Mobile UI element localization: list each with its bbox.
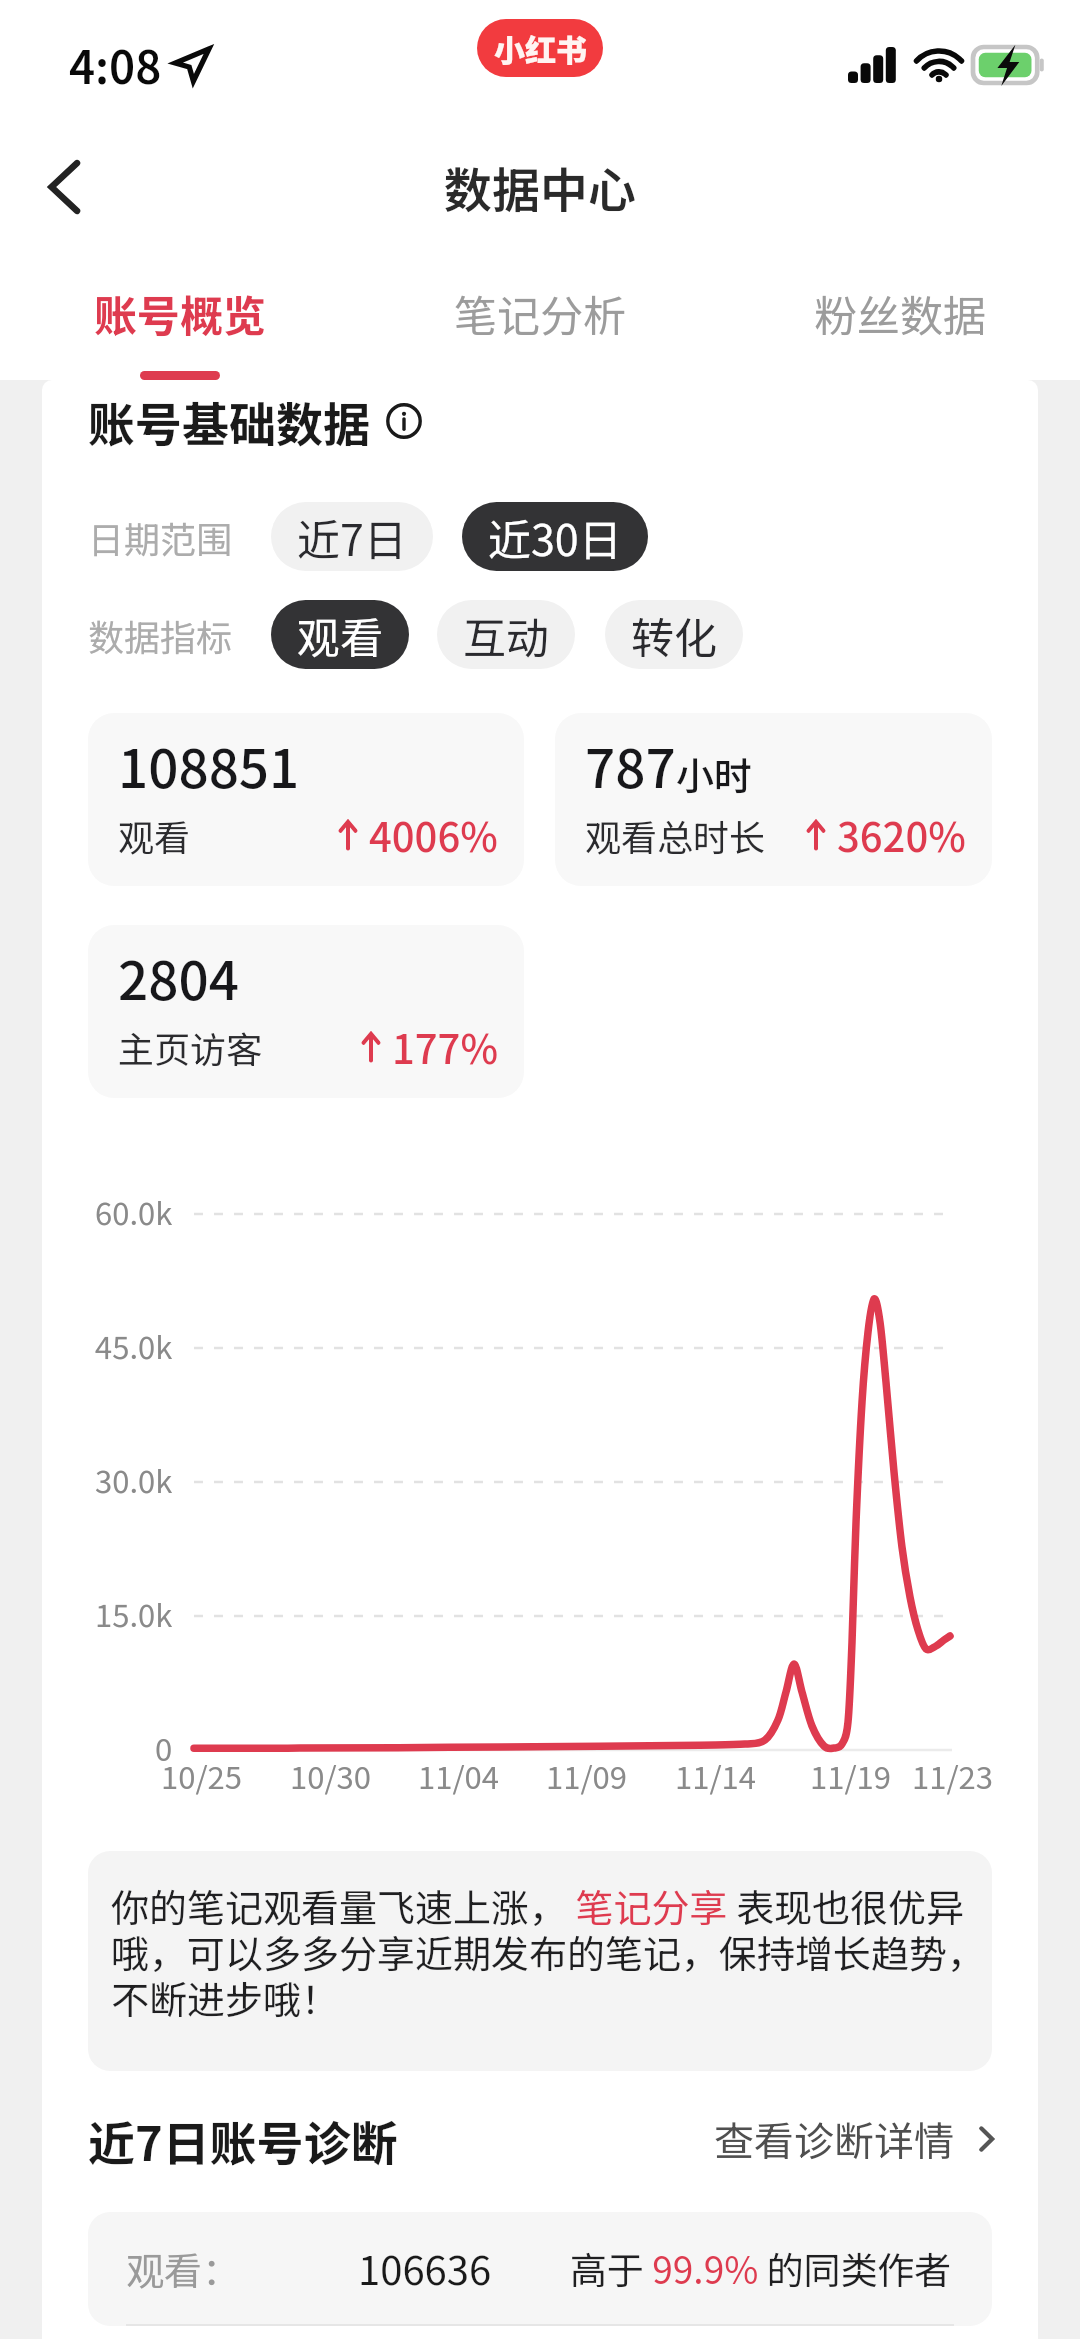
staticText: 日期范围	[88, 511, 233, 563]
button[interactable]: 2804	[88, 925, 524, 1098]
button[interactable]: Info	[382, 399, 426, 443]
button[interactable]: 账号概览	[0, 250, 360, 380]
staticText: 账号基础数据	[88, 387, 370, 455]
staticText: 787	[585, 727, 676, 804]
staticText: 查看诊断详情	[714, 2110, 954, 2168]
staticText: 笔记分析	[454, 282, 626, 344]
staticText: 近7日	[297, 506, 407, 568]
button[interactable]: 787	[555, 713, 992, 886]
staticText: 11/19	[810, 1753, 891, 1798]
staticText: 小红书	[494, 26, 587, 71]
staticText: 4:08	[69, 32, 162, 97]
button[interactable]: 粉丝数据	[720, 250, 1080, 380]
button[interactable]: Back	[26, 149, 102, 225]
staticText: 观看总时长	[585, 809, 766, 861]
staticText: 10/25	[161, 1753, 242, 1798]
staticText: 3620%	[837, 806, 966, 864]
staticText: 108851	[118, 727, 300, 804]
button[interactable]: 互动	[437, 600, 575, 669]
staticText: 11/23	[912, 1753, 993, 1798]
staticText: 0	[155, 1725, 173, 1770]
staticText: 近7日账号诊断	[88, 2106, 398, 2172]
staticText: 转化	[631, 604, 717, 666]
staticText: 10/30	[290, 1753, 371, 1798]
staticText: 高于 99.9% 的同类作者	[570, 2241, 952, 2295]
staticText: 观看：	[126, 2241, 241, 2296]
button[interactable]: 108851	[88, 713, 524, 886]
staticText: 观看	[297, 604, 383, 666]
staticText: 15.0k	[95, 1591, 173, 1636]
staticText: 45.0k	[95, 1323, 173, 1368]
staticText: 177%	[392, 1018, 498, 1076]
staticText: 30.0k	[95, 1457, 173, 1502]
button[interactable]: 查看诊断详情	[714, 2110, 1000, 2168]
staticText: 你的笔记观看量飞速上涨， 笔记分享 表现也很优异哦，可以多多分享近期发布的笔记，…	[111, 1878, 990, 2025]
staticText: 11/04	[418, 1753, 499, 1798]
staticText: 106636	[358, 2239, 492, 2297]
button[interactable]: 近7日	[271, 502, 433, 571]
staticText: 观看	[118, 809, 191, 861]
button[interactable]: 转化	[605, 600, 743, 669]
staticText: 11/09	[546, 1753, 627, 1798]
button[interactable]: 近30日	[462, 502, 648, 571]
staticText: 小时	[676, 746, 753, 801]
staticText: 2804	[118, 939, 239, 1016]
staticText: 互动	[463, 604, 549, 666]
staticText: 数据指标	[88, 609, 233, 661]
staticText: 60.0k	[95, 1189, 173, 1234]
button[interactable]: 笔记分析	[360, 250, 720, 380]
staticText: 4006%	[369, 806, 498, 864]
staticText: 近30日	[488, 506, 622, 568]
staticText: 11/14	[675, 1753, 756, 1798]
staticText: 粉丝数据	[814, 282, 986, 344]
staticText: 账号概览	[94, 282, 266, 344]
button[interactable]: 观看	[271, 600, 409, 669]
staticText: 数据中心	[444, 152, 637, 222]
staticText: 主页访客	[118, 1021, 263, 1073]
